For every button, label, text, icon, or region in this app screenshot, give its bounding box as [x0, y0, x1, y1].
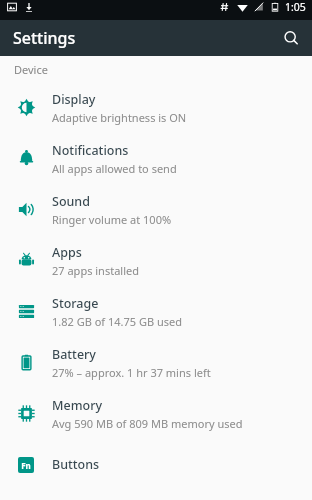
staticText: Settings — [13, 27, 76, 49]
staticText: Battery — [52, 346, 96, 363]
staticText: Memory — [52, 397, 103, 414]
staticText: Avg 590 MB of 809 MB memory used — [52, 416, 243, 431]
staticText: Device — [14, 62, 48, 77]
button[interactable]: Notifications — [0, 133, 312, 184]
staticText: 1:05 — [285, 0, 306, 14]
staticText: Fn — [21, 460, 31, 471]
staticText: Apps — [52, 244, 82, 261]
staticText: Notifications — [52, 142, 129, 159]
button[interactable]: Display — [0, 82, 312, 133]
staticText: All apps allowed to send — [52, 161, 177, 176]
staticText: Adaptive brightness is ON — [52, 110, 187, 125]
staticText: Sound — [52, 193, 90, 210]
staticText: Display — [52, 91, 96, 108]
button[interactable]: Memory — [0, 388, 312, 439]
staticText: Buttons — [52, 456, 100, 473]
staticText: Ringer volume at 100% — [52, 212, 172, 227]
button[interactable]: Search — [276, 23, 306, 53]
staticText: 27 apps installed — [52, 263, 139, 278]
button[interactable]: Battery — [0, 337, 312, 388]
staticText: Storage — [52, 295, 99, 312]
button[interactable]: Sound — [0, 184, 312, 235]
button[interactable]: Apps — [0, 235, 312, 286]
button[interactable]: Fn — [0, 439, 312, 490]
staticText: 1.82 GB of 14.75 GB used — [52, 314, 183, 329]
staticText: 27% – approx. 1 hr 37 mins left — [52, 365, 211, 380]
button[interactable]: Storage — [0, 286, 312, 337]
